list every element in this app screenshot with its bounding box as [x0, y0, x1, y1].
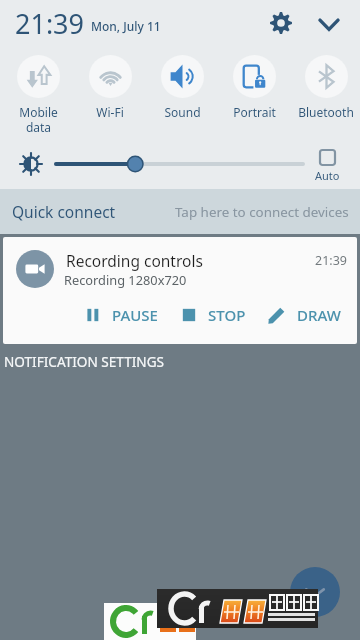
- staticText: Recording 1280x720: [64, 271, 187, 288]
- staticText: Quick connect: [12, 201, 116, 222]
- staticText: 21:39: [315, 252, 347, 269]
- staticText: Mobile data: [19, 104, 58, 135]
- button[interactable]: Portrait: [218, 55, 290, 120]
- button[interactable]: PAUSE: [84, 299, 160, 331]
- staticText: NOTIFICATION SETTINGS: [4, 352, 165, 371]
- button[interactable]: STOP: [180, 299, 248, 331]
- button[interactable]: NOTIFICATION SETTINGS: [4, 352, 165, 371]
- staticText: Tap here to connect devices: [175, 203, 349, 221]
- button[interactable]: Quick connect: [0, 189, 360, 234]
- staticText: Wi-Fi: [96, 104, 124, 120]
- staticText: STOP: [208, 305, 246, 325]
- button[interactable]: Settings: [264, 6, 298, 40]
- button[interactable]: Mobile data: [2, 55, 74, 135]
- button[interactable]: Recording controls: [3, 237, 357, 344]
- staticText: Sound: [164, 104, 201, 120]
- staticText: Portrait: [233, 104, 276, 120]
- button[interactable]: Bluetooth: [290, 55, 360, 120]
- staticText: PAUSE: [112, 305, 158, 325]
- button[interactable]: Sound: [146, 55, 218, 120]
- staticText: Auto: [315, 168, 340, 183]
- staticText: Recording controls: [66, 250, 203, 271]
- staticText: Bluetooth: [298, 104, 354, 120]
- staticText: 21:39: [15, 5, 85, 42]
- button[interactable]: Wi-Fi: [74, 55, 146, 120]
- button[interactable]: Auto: [303, 147, 351, 185]
- button[interactable]: Close panel: [290, 567, 340, 617]
- staticText: DRAW: [297, 305, 341, 325]
- button[interactable]: Expand quick settings: [312, 8, 346, 42]
- button[interactable]: DRAW: [266, 299, 343, 331]
- staticText: Mon, July 11: [91, 18, 161, 34]
